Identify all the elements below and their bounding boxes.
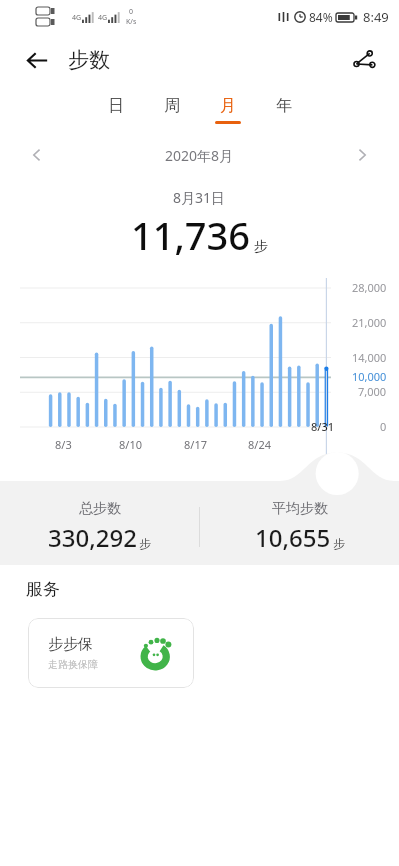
staticText: 8/17 bbox=[184, 437, 207, 452]
staticText: 走路换保障 bbox=[48, 658, 98, 671]
staticText: 4G bbox=[98, 13, 108, 23]
staticText: 21,000 bbox=[352, 315, 387, 330]
staticText: 8/31 bbox=[311, 419, 335, 434]
staticText: 10,655 bbox=[255, 521, 331, 554]
staticText: 步步保 bbox=[48, 635, 93, 654]
staticText: 84% bbox=[309, 9, 333, 25]
staticText: 2020年8月 bbox=[165, 146, 234, 165]
staticText: 总步数 bbox=[79, 500, 121, 518]
button[interactable]: 步步保 bbox=[28, 618, 194, 688]
staticText: 步 bbox=[254, 238, 268, 256]
button[interactable]: Next month bbox=[345, 138, 379, 172]
staticText: 4G bbox=[72, 13, 82, 23]
staticText: 8:49 bbox=[363, 8, 389, 26]
staticText: 330,292 bbox=[48, 521, 137, 554]
button[interactable]: 总步数 bbox=[0, 500, 199, 554]
staticText: 步 bbox=[333, 536, 345, 551]
staticText: 年 bbox=[276, 96, 292, 116]
staticText: 8/24 bbox=[248, 437, 271, 452]
staticText: 8/10 bbox=[119, 437, 142, 452]
staticText: 28,000 bbox=[352, 280, 387, 295]
staticText: 0 bbox=[380, 419, 387, 434]
staticText: 步 bbox=[139, 536, 151, 551]
button[interactable]: 年 bbox=[256, 86, 312, 134]
button[interactable]: Previous month bbox=[20, 138, 54, 172]
staticText: 11,736 bbox=[131, 209, 251, 261]
staticText: 8月31日 bbox=[173, 188, 226, 207]
staticText: 7,000 bbox=[358, 384, 387, 399]
button[interactable]: Back bbox=[16, 39, 58, 81]
staticText: 平均步数 bbox=[272, 500, 328, 518]
staticText: 月 bbox=[220, 96, 236, 116]
staticText: 10,000 bbox=[352, 369, 387, 384]
button[interactable]: 周 bbox=[144, 86, 200, 134]
staticText: 0 bbox=[129, 7, 134, 17]
staticText: 日 bbox=[108, 96, 124, 116]
button[interactable]: 日 bbox=[88, 86, 144, 134]
staticText: 周 bbox=[164, 96, 180, 116]
staticText: K/s bbox=[126, 17, 137, 27]
staticText: 服务 bbox=[26, 579, 60, 600]
staticText: 步数 bbox=[68, 47, 110, 73]
button[interactable]: 月 bbox=[200, 86, 256, 134]
button[interactable]: Share bbox=[343, 39, 385, 81]
staticText: 8/3 bbox=[55, 437, 72, 452]
staticText: 14,000 bbox=[352, 350, 387, 365]
button[interactable]: 平均步数 bbox=[200, 500, 399, 554]
